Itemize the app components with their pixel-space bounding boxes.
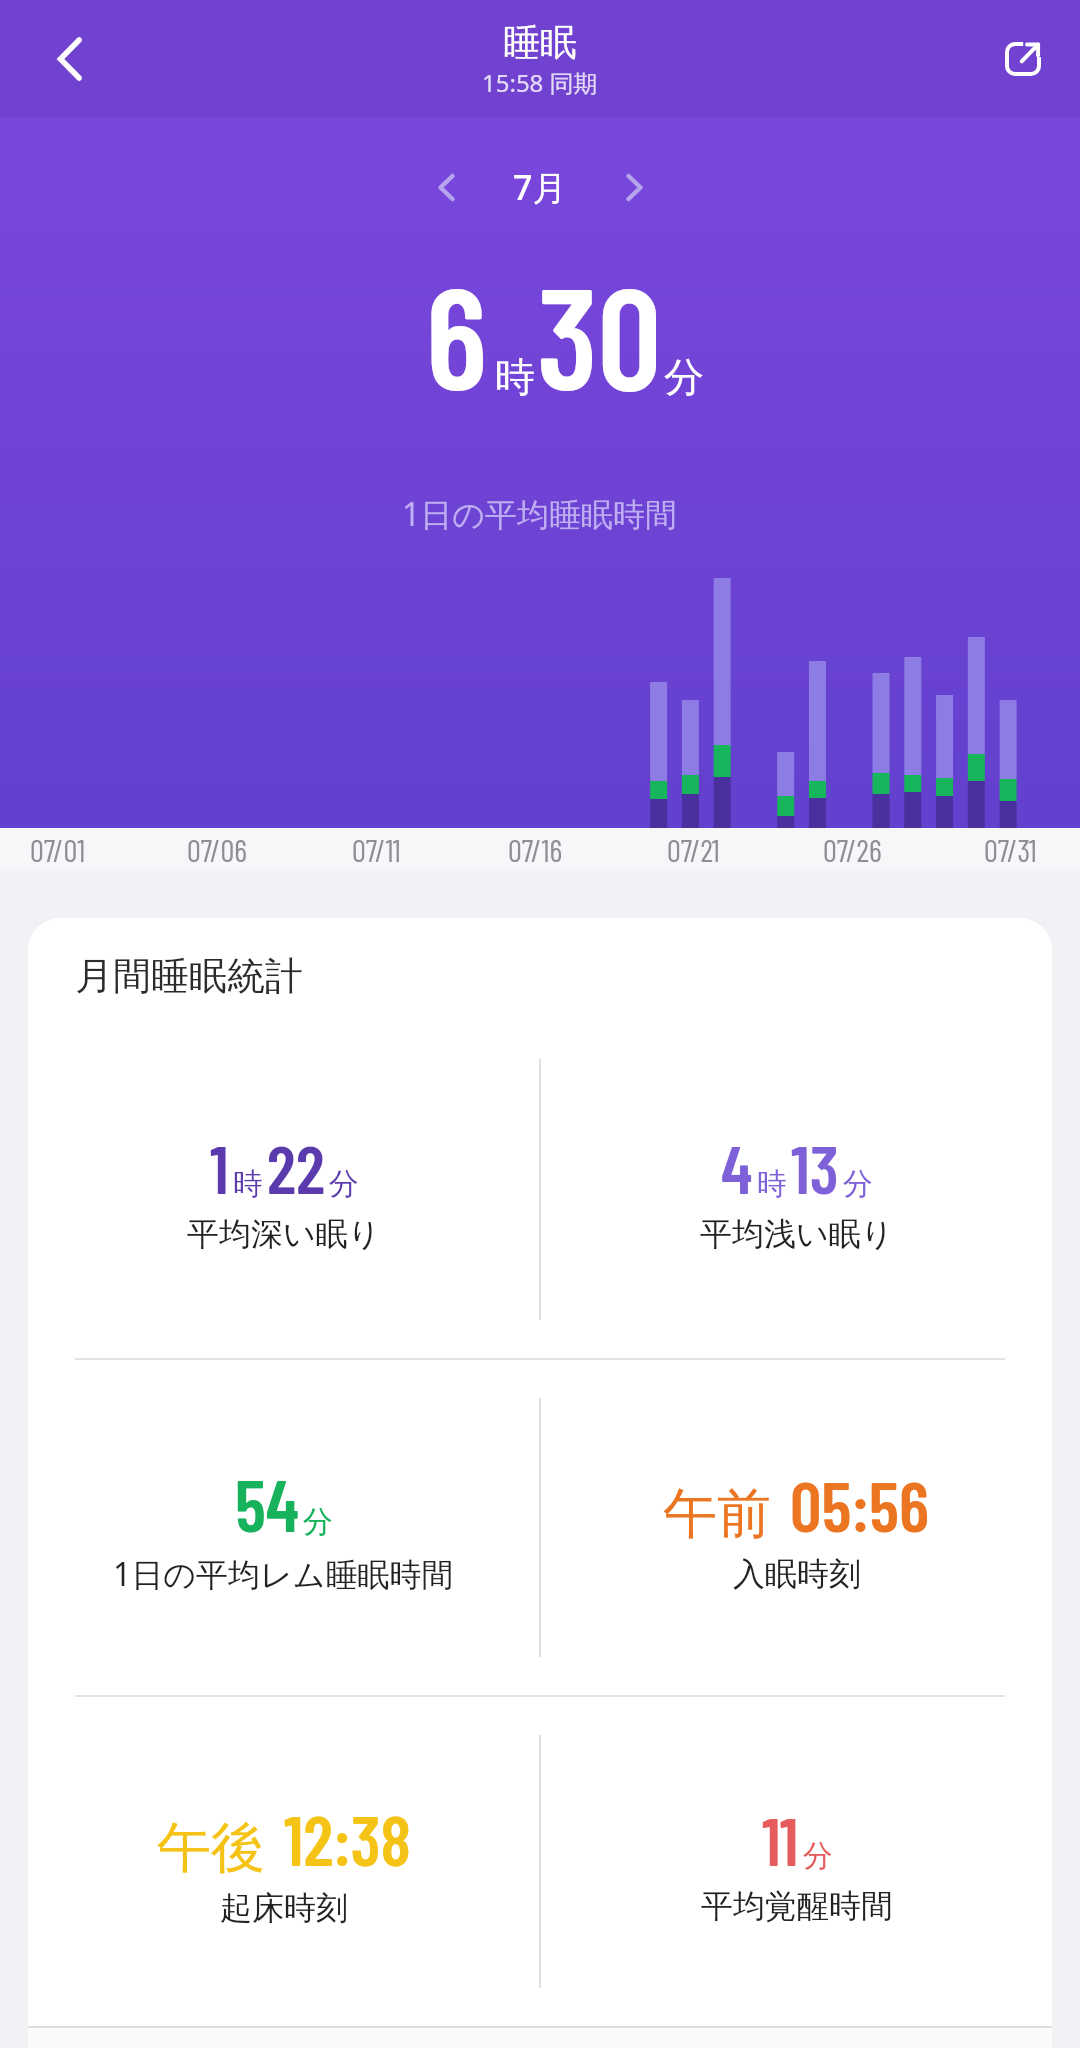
button[interactable]: 54 <box>28 1360 539 1695</box>
staticText: 12:38 <box>284 1796 411 1880</box>
staticText: 54 <box>235 1460 299 1546</box>
staticText: 午後 <box>157 1808 280 1882</box>
staticText: 1日の平均レム睡眠時間 <box>113 1552 454 1596</box>
staticText: 07/26 <box>823 831 882 868</box>
staticText: 分 <box>303 1503 333 1541</box>
staticText: 分 <box>843 1165 873 1203</box>
staticText: 午前 <box>663 1474 786 1548</box>
button[interactable]: 1 <box>28 1021 539 1358</box>
staticText: 07/11 <box>352 831 401 868</box>
button[interactable]: 4 <box>541 1021 1052 1358</box>
button[interactable] <box>1000 35 1048 83</box>
staticText: 分 <box>803 1837 833 1875</box>
staticText: 30 <box>537 248 662 418</box>
staticText: 平均深い眠り <box>187 1214 381 1254</box>
staticText: 07/21 <box>667 831 720 868</box>
staticText: 1 <box>210 1126 229 1208</box>
button[interactable] <box>610 163 658 211</box>
staticText: 07/06 <box>187 831 247 868</box>
staticText: 7月 <box>513 164 567 210</box>
staticText: 時 <box>233 1165 263 1203</box>
staticText: 睡眠 <box>503 19 577 66</box>
staticText: 起床時刻 <box>220 1888 348 1928</box>
staticText: 分 <box>664 352 704 402</box>
staticText: 22 <box>267 1126 325 1208</box>
button[interactable]: 午前 <box>541 1360 1052 1695</box>
button[interactable] <box>422 163 470 211</box>
staticText: 平均覚醒時間 <box>701 1886 893 1926</box>
staticText: 11 <box>762 1798 799 1880</box>
staticText: 月間睡眠統計 <box>75 952 303 1000</box>
staticText: 05:56 <box>790 1462 930 1546</box>
staticText: 6 <box>426 248 487 418</box>
staticText: 07/16 <box>508 831 563 868</box>
button[interactable]: 11 <box>541 1697 1052 2026</box>
staticText: 1日の平均睡眠時間 <box>402 492 678 536</box>
staticText: 分 <box>329 1165 359 1203</box>
staticText: 07/01 <box>30 831 86 868</box>
staticText: 07/31 <box>984 831 1037 868</box>
button[interactable] <box>44 33 96 85</box>
staticText: 入眠時刻 <box>733 1554 861 1594</box>
staticText: 13 <box>791 1126 839 1208</box>
staticText: 時 <box>757 1165 787 1203</box>
staticText: 4 <box>721 1126 753 1208</box>
staticText: 15:58 同期 <box>482 66 598 99</box>
staticText: 平均浅い眠り <box>700 1214 894 1254</box>
button[interactable]: 午後 <box>28 1697 539 2026</box>
staticText: 時 <box>495 352 535 402</box>
